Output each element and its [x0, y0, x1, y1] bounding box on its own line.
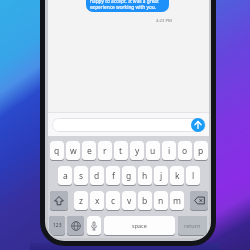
- button[interactable]: s: [74, 166, 88, 186]
- staticText: d: [94, 170, 100, 182]
- staticText: y: [135, 145, 140, 157]
- button[interactable]: l: [186, 166, 200, 186]
- staticText: k: [175, 170, 180, 182]
- staticText: e: [87, 145, 92, 157]
- staticText: z: [79, 195, 83, 207]
- button[interactable]: [190, 191, 208, 211]
- staticText: f: [112, 170, 115, 182]
- staticText: r: [103, 145, 107, 157]
- button[interactable]: u: [146, 141, 160, 161]
- staticText: l: [192, 170, 195, 182]
- button[interactable]: w: [66, 141, 80, 161]
- staticText: n: [158, 195, 164, 207]
- staticText: w: [70, 145, 77, 157]
- button[interactable]: t: [114, 141, 128, 161]
- staticText: g: [126, 170, 132, 182]
- button[interactable]: q: [50, 141, 64, 161]
- staticText: q: [54, 145, 60, 157]
- button[interactable]: k: [170, 166, 184, 186]
- button[interactable]: [191, 118, 205, 132]
- button[interactable]: n: [154, 191, 168, 211]
- button[interactable]: c: [106, 191, 120, 211]
- button[interactable]: m: [170, 191, 184, 211]
- staticText: 4:23 PM: [156, 18, 172, 24]
- staticText: a: [63, 170, 68, 182]
- button[interactable]: r: [98, 141, 112, 161]
- staticText: s: [79, 170, 84, 182]
- staticText: m: [173, 195, 181, 207]
- button[interactable]: 123: [49, 216, 65, 236]
- staticText: p: [198, 145, 204, 157]
- button[interactable]: space: [104, 216, 175, 236]
- staticText: b: [142, 195, 148, 207]
- button[interactable]: [87, 216, 101, 236]
- button[interactable]: d: [90, 166, 104, 186]
- button[interactable]: f: [106, 166, 120, 186]
- staticText: 123: [53, 222, 62, 229]
- staticText: t: [119, 145, 123, 157]
- button[interactable]: y: [130, 141, 144, 161]
- button[interactable]: i: [162, 141, 176, 161]
- button[interactable]: j: [154, 166, 168, 186]
- button[interactable]: z: [74, 191, 88, 211]
- staticText: o: [182, 145, 188, 157]
- button[interactable]: e: [82, 141, 96, 161]
- staticText: x: [95, 195, 100, 207]
- staticText: j: [160, 170, 163, 182]
- button[interactable]: return: [178, 216, 207, 236]
- button[interactable]: [50, 191, 68, 211]
- button[interactable]: [52, 118, 206, 132]
- button[interactable]: [67, 216, 84, 236]
- staticText: return: [184, 222, 201, 229]
- button[interactable]: x: [90, 191, 104, 211]
- staticText: c: [111, 195, 116, 207]
- staticText: happy to accept. It was a great experien…: [90, 0, 159, 10]
- button[interactable]: o: [178, 141, 192, 161]
- button[interactable]: p: [194, 141, 208, 161]
- staticText: v: [127, 195, 132, 207]
- staticText: space: [132, 222, 147, 229]
- button[interactable]: h: [138, 166, 152, 186]
- button[interactable]: g: [122, 166, 136, 186]
- button[interactable]: b: [138, 191, 152, 211]
- staticText: h: [142, 170, 148, 182]
- button[interactable]: a: [58, 166, 72, 186]
- button[interactable]: v: [122, 191, 136, 211]
- staticText: i: [168, 145, 171, 157]
- staticText: u: [150, 145, 156, 157]
